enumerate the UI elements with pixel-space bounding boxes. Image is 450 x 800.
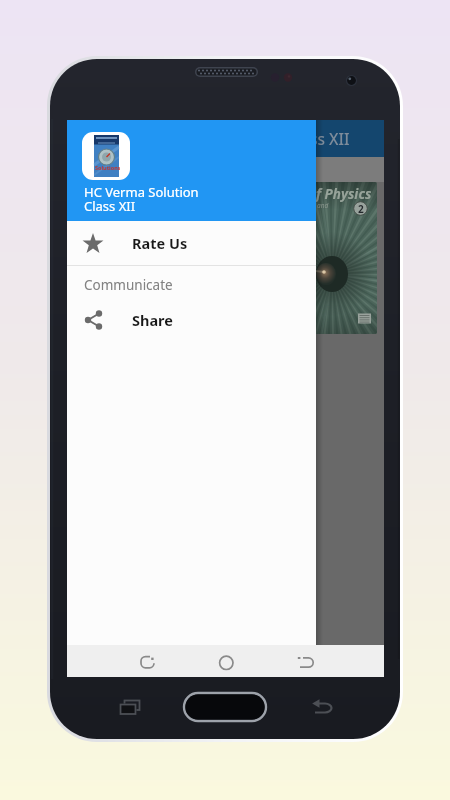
staticText: Share (132, 310, 173, 330)
staticText: 2 (358, 202, 364, 216)
staticText: and (317, 201, 329, 210)
button[interactable]: Share (67, 298, 316, 342)
button[interactable]: Solutions (82, 132, 130, 180)
staticText: Rate Us (132, 233, 188, 253)
staticText: f Physics (316, 185, 372, 203)
staticText: HC Verma Solution Class XII (84, 183, 199, 215)
staticText: Communicate (84, 276, 173, 294)
staticText: Solutions (95, 164, 120, 171)
staticText: ss XII (310, 128, 350, 149)
button[interactable]: Rate Us (67, 221, 316, 265)
